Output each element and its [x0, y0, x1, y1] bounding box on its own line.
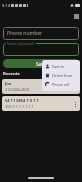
- button[interactable]: Save: [3, 59, 79, 68]
- staticText: 54 11 0854 1 0 1 1: [5, 98, 39, 103]
- staticText: Jim: [5, 81, 12, 86]
- button[interactable]: Phone call: [42, 80, 80, 89]
- staticText: Recents: [3, 71, 20, 77]
- staticText: Delete from recent: [52, 73, 77, 78]
- button[interactable]: Delete from recent: [42, 71, 80, 80]
- staticText: Name (optional): [7, 41, 35, 46]
- button[interactable]: 54 11 0854 1 0 1 1: [2, 96, 80, 111]
- staticText: 353 0 1 1 1 1 1 1: [5, 104, 34, 109]
- staticText: Phone number: [7, 30, 43, 37]
- button[interactable]: Jim: [2, 79, 80, 94]
- staticText: 3123456+800: [5, 87, 29, 92]
- staticText: Phone call: [52, 82, 70, 87]
- staticText: Save to contacts: [52, 64, 77, 69]
- button[interactable]: More options: [73, 13, 79, 19]
- button[interactable]: [3, 43, 79, 56]
- staticText: 5:14: [2, 3, 10, 8]
- staticText: Save: [36, 61, 47, 67]
- button[interactable]: Item options: [72, 101, 78, 107]
- button[interactable]: Phone number: [3, 27, 79, 40]
- button[interactable]: Save to contacts: [42, 62, 80, 71]
